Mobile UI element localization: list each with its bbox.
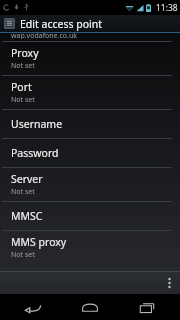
button[interactable]: Port bbox=[0, 76, 180, 109]
staticText: Not set bbox=[11, 250, 35, 260]
staticText: Not set bbox=[11, 61, 35, 71]
staticText: Edit access point bbox=[20, 17, 103, 31]
staticText: Not set bbox=[11, 187, 35, 197]
staticText: Proxy bbox=[11, 46, 39, 60]
staticText: Server bbox=[11, 172, 43, 186]
button[interactable]: Username bbox=[0, 110, 180, 138]
staticText: MMS proxy bbox=[11, 235, 67, 249]
staticText: 11:38 bbox=[156, 2, 178, 14]
button[interactable]: Password bbox=[0, 139, 180, 167]
button[interactable]: Server bbox=[0, 168, 180, 201]
button[interactable]: MMS proxy bbox=[0, 231, 180, 264]
button[interactable]: wap.vodafone.co.uk bbox=[0, 33, 180, 41]
staticText: Username bbox=[11, 117, 63, 131]
staticText: Not set bbox=[11, 95, 35, 105]
staticText: Port bbox=[11, 80, 32, 94]
button[interactable]: Back bbox=[9, 294, 57, 320]
staticText: MMSC bbox=[11, 209, 43, 223]
button[interactable]: Proxy bbox=[0, 42, 180, 75]
staticText: wap.vodafone.co.uk bbox=[11, 31, 77, 39]
staticText: Password bbox=[11, 146, 59, 160]
button[interactable]: Recent apps bbox=[123, 294, 171, 320]
button[interactable]: More options bbox=[158, 271, 180, 294]
button[interactable]: MMSC bbox=[0, 202, 180, 230]
button[interactable]: Home bbox=[66, 294, 114, 320]
button[interactable]: Edit access point bbox=[0, 15, 180, 32]
